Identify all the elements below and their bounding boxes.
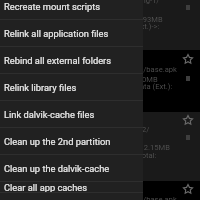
staticText: Link dalvik-cache files — [4, 109, 95, 120]
button[interactable]: Clean up the 2nd partition — [0, 128, 143, 155]
staticText: com.android.vending-1/ — [79, 0, 160, 5]
staticText: Data Total: — [120, 151, 157, 160]
staticText: Size: 2.15MB — [126, 143, 170, 152]
staticText: Size: 20MB — [120, 75, 158, 84]
staticText: Clean up the dalvik-cache — [4, 163, 110, 174]
staticText: Relink library files — [4, 82, 77, 93]
button[interactable]: Clear all app caches — [0, 182, 143, 193]
button[interactable]: Rebind all external folders — [0, 47, 143, 74]
staticText: /data/app/com.x-2/base.apk — [79, 65, 177, 74]
button[interactable] — [143, 0, 200, 50]
staticText: Size: 93MB — [125, 15, 163, 24]
button[interactable]: Relink library files — [0, 74, 143, 101]
staticText: Rebind all external folders — [4, 55, 112, 66]
button[interactable] — [143, 50, 200, 112]
button[interactable] — [143, 181, 200, 200]
button[interactable]: Relink all application files — [0, 20, 143, 47]
staticText: Relink all application files — [4, 28, 109, 39]
staticText: Clear all app caches — [4, 182, 88, 193]
button[interactable]: Recreate mount scripts — [0, 0, 143, 20]
button[interactable]: Favourite — [183, 115, 193, 125]
button[interactable]: Favourite — [183, 184, 193, 194]
button[interactable]: Clean up the dalvik-cache — [0, 155, 143, 182]
staticText: /data/data/com.example.app-2/ — [40, 125, 150, 134]
button[interactable] — [143, 112, 200, 181]
staticText: /data/app/com.y-1/base.apk — [79, 195, 177, 200]
staticText: Data (Ext.)->: — [116, 22, 160, 31]
button[interactable]: Favourite — [183, 54, 193, 64]
staticText: Data (Ext.): — [135, 82, 173, 91]
button[interactable]: Link dalvik-cache files — [0, 101, 143, 128]
staticText: Clean up the 2nd partition — [4, 136, 111, 147]
staticText: Recreate mount scripts — [4, 1, 101, 12]
